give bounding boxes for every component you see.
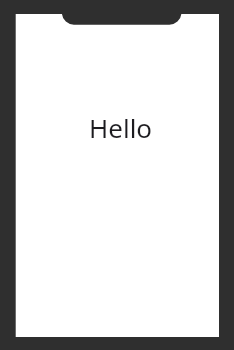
staticText: Hello xyxy=(89,110,153,145)
